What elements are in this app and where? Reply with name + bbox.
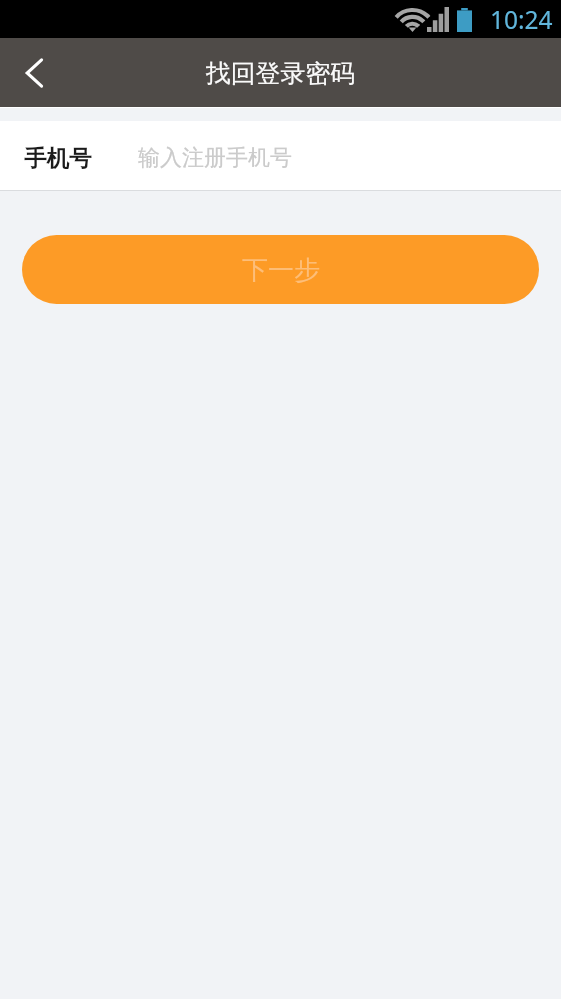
staticText: 下一步 bbox=[242, 254, 320, 287]
staticText: 找回登录密码 bbox=[206, 58, 355, 89]
button[interactable]: Back bbox=[0, 38, 62, 107]
staticText: 输入注册手机号 bbox=[138, 144, 292, 172]
button[interactable]: 下一步 bbox=[22, 235, 539, 304]
staticText: 10:24 bbox=[490, 3, 553, 34]
staticText: 手机号 bbox=[24, 144, 92, 172]
button[interactable]: 手机号 bbox=[0, 121, 561, 190]
